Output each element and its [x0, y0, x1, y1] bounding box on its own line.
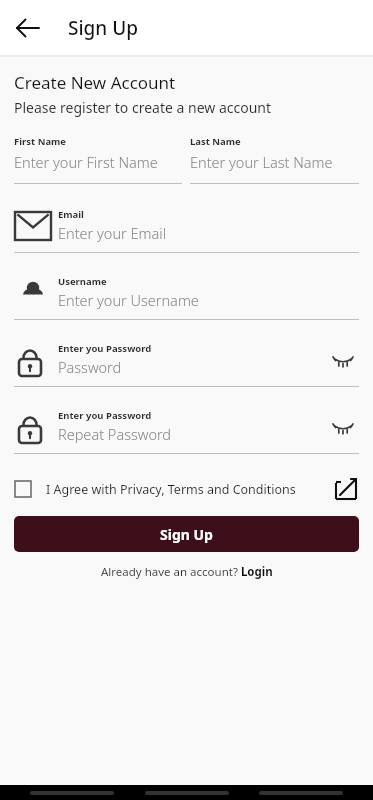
staticText: Enter your Last Name [190, 152, 333, 172]
button[interactable]: Last Name [190, 135, 359, 184]
button[interactable]: Username [0, 275, 373, 320]
button[interactable]: System navigation [259, 791, 343, 795]
staticText: Repeat Password [58, 424, 172, 444]
button[interactable]: Back [10, 10, 46, 46]
staticText: Sign Up [160, 525, 213, 544]
button[interactable]: System navigation [30, 791, 114, 795]
button[interactable]: I Agree with Privacy, Terms and Conditio… [46, 481, 333, 498]
staticText: Sign Up [68, 15, 139, 41]
button[interactable]: Enter you Password [0, 342, 373, 387]
button[interactable]: Show password [327, 411, 359, 443]
staticText: Enter you Password [58, 342, 152, 355]
button[interactable]: Show password [327, 344, 359, 376]
staticText: Password [58, 357, 122, 377]
button[interactable]: Already have an account? Login [101, 564, 273, 580]
button[interactable]: Enter you Password [0, 409, 373, 454]
button[interactable]: Email [0, 208, 373, 253]
staticText: First Name [14, 135, 67, 148]
button[interactable]: Open terms [333, 476, 359, 502]
staticText: Username [58, 275, 107, 288]
button[interactable]: Agree checkbox [14, 480, 32, 498]
button[interactable]: Sign Up [14, 516, 359, 552]
staticText: Enter your First Name [14, 152, 158, 172]
staticText: Please register to create a new account [14, 98, 272, 117]
button[interactable]: System navigation [145, 791, 229, 795]
staticText: Enter your Email [58, 223, 166, 243]
staticText: Last Name [190, 135, 241, 148]
staticText: Enter your Username [58, 290, 199, 310]
button[interactable]: First Name [14, 135, 182, 184]
staticText: Create New Account [14, 71, 176, 94]
staticText: Email [58, 208, 84, 221]
staticText: Enter you Password [58, 409, 152, 422]
